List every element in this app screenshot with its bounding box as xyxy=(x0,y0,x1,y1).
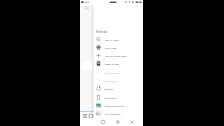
staticText: Print page xyxy=(105,46,117,49)
button[interactable]: Back xyxy=(100,119,106,125)
button[interactable]: Print page xyxy=(94,43,143,51)
staticText: Add to homescreen xyxy=(105,54,127,57)
button[interactable]: Add to homescreen xyxy=(94,51,143,59)
button[interactable]: Find in page xyxy=(94,35,143,43)
button[interactable]: Open in app xyxy=(94,59,143,67)
button[interactable]: Refresh xyxy=(94,84,143,92)
staticText: Shortcuts xyxy=(96,30,108,33)
button[interactable]: Recents xyxy=(129,119,135,125)
staticText: Find in page xyxy=(105,38,119,41)
button[interactable]: Go forward xyxy=(94,76,143,84)
staticText: Go forward xyxy=(105,79,118,82)
button[interactable]: Add language xyxy=(94,109,143,117)
button[interactable]: Go backward xyxy=(94,68,143,76)
staticText: Bookmark xyxy=(105,96,117,99)
button[interactable]: Home xyxy=(115,119,121,125)
button[interactable]: Bookmark xyxy=(94,93,143,101)
staticText: View desktop site xyxy=(105,104,125,107)
staticText: Refresh xyxy=(105,87,114,90)
staticText: Go backward xyxy=(105,71,120,74)
button[interactable]: View desktop site xyxy=(94,101,143,109)
staticText: Add language xyxy=(105,112,121,115)
staticText: Open in app xyxy=(105,62,119,65)
